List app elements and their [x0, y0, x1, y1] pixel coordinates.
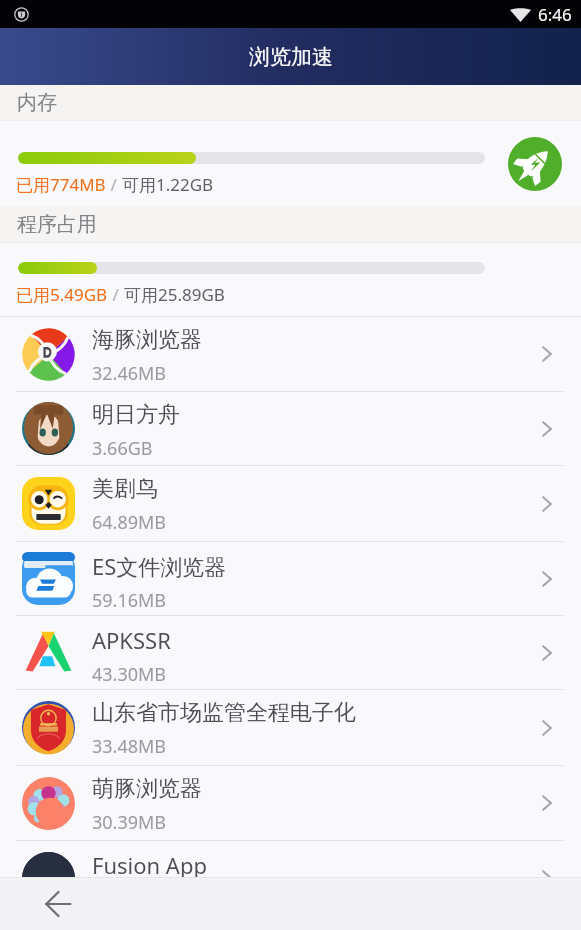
staticText: 浏览加速 [249, 44, 333, 70]
staticText: 32.46MB [92, 361, 167, 386]
staticText: 明日方舟 [92, 401, 180, 429]
staticText: 程序占用 [17, 212, 97, 237]
button[interactable]: Back [34, 880, 82, 928]
other: Security [14, 7, 29, 22]
button[interactable]: 海豚浏览器 [0, 317, 581, 391]
staticText: 6:46 [538, 3, 572, 26]
button[interactable]: ES文件浏览器 [0, 542, 581, 615]
button[interactable]: APKSSR [0, 616, 581, 689]
staticText: 64.89MB [92, 510, 167, 535]
button[interactable]: 萌豚浏览器 [0, 766, 581, 840]
staticText: 美剧鸟 [92, 475, 158, 503]
staticText: 海豚浏览器 [92, 326, 202, 354]
staticText: 萌豚浏览器 [92, 775, 202, 803]
staticText: APKSSR [92, 625, 171, 655]
staticText: 43.30MB [92, 662, 167, 687]
staticText: / [106, 173, 122, 196]
staticText: / [108, 283, 124, 306]
staticText: 可用1.22GB [122, 173, 214, 196]
button[interactable]: Boost [508, 137, 562, 191]
staticText: ES文件浏览器 [92, 551, 227, 581]
staticText: 已用5.49GB [16, 283, 108, 306]
button[interactable]: Fusion App [0, 841, 581, 915]
staticText: 33.48MB [92, 734, 167, 759]
button[interactable]: 明日方舟 [0, 392, 581, 465]
button[interactable]: 山东省市场监管全程电子化 [0, 690, 581, 765]
staticText: 30.39MB [92, 810, 167, 835]
staticText: 山东省市场监管全程电子化 [92, 699, 356, 727]
staticText: 可用25.89GB [124, 283, 225, 306]
button[interactable]: 美剧鸟 [0, 466, 581, 541]
staticText: Fusion App [92, 850, 207, 880]
staticText: 内存 [17, 90, 57, 115]
staticText: 3.66GB [92, 436, 153, 461]
staticText: 59.16MB [92, 588, 167, 613]
staticText: 已用774MB [16, 173, 106, 196]
